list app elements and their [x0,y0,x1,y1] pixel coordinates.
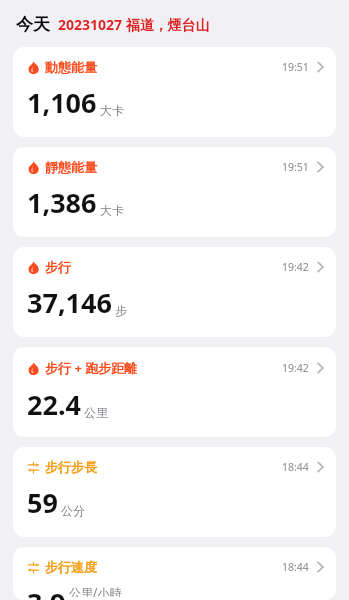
staticText: 1,106 [27,84,97,121]
other: Open details [317,561,324,573]
staticText: 今天 [16,14,50,35]
other: Open details [317,161,324,173]
other: Open details [317,261,324,273]
staticText: 22.4 [27,386,81,423]
staticText: 3.9 [27,584,66,600]
staticText: 步行速度 [45,559,97,575]
staticText: 公分 [61,503,85,518]
other: Open details [317,362,324,374]
other: Open details [317,61,324,73]
button[interactable]: Stride [13,547,336,600]
staticText: 靜態能量 [45,159,97,175]
staticText: 18:44 [282,560,309,574]
staticText: 大卡 [100,203,124,218]
staticText: 公里/小時 [69,584,122,597]
staticText: 19:42 [282,361,309,375]
other: Energy [27,261,40,274]
other: Open details [317,461,324,473]
staticText: 公里 [84,405,108,420]
other: Energy [27,161,40,174]
staticText: 步行 + 跑步距離 [45,359,138,377]
staticText: 18:44 [282,460,309,474]
button[interactable]: Energy [13,147,336,237]
staticText: 大卡 [100,103,124,118]
staticText: 19:51 [282,60,309,74]
staticText: 20231027 福道，煙台山 [58,15,210,34]
other: Energy [27,362,40,375]
staticText: 59 [27,484,58,521]
staticText: 步行 [45,259,71,275]
staticText: 步 [115,303,127,318]
other: Energy [27,61,40,74]
staticText: 動態能量 [45,59,97,75]
other: Stride [27,461,40,474]
staticText: 19:42 [282,260,309,274]
staticText: 37,146 [27,284,112,321]
button[interactable]: Stride [13,447,336,537]
button[interactable]: Energy [13,347,336,437]
staticText: 19:51 [282,160,309,174]
staticText: 步行步長 [45,459,97,475]
button[interactable]: Energy [13,47,336,137]
other: Stride [27,561,40,574]
button[interactable]: Energy [13,247,336,337]
staticText: 1,386 [27,184,97,221]
